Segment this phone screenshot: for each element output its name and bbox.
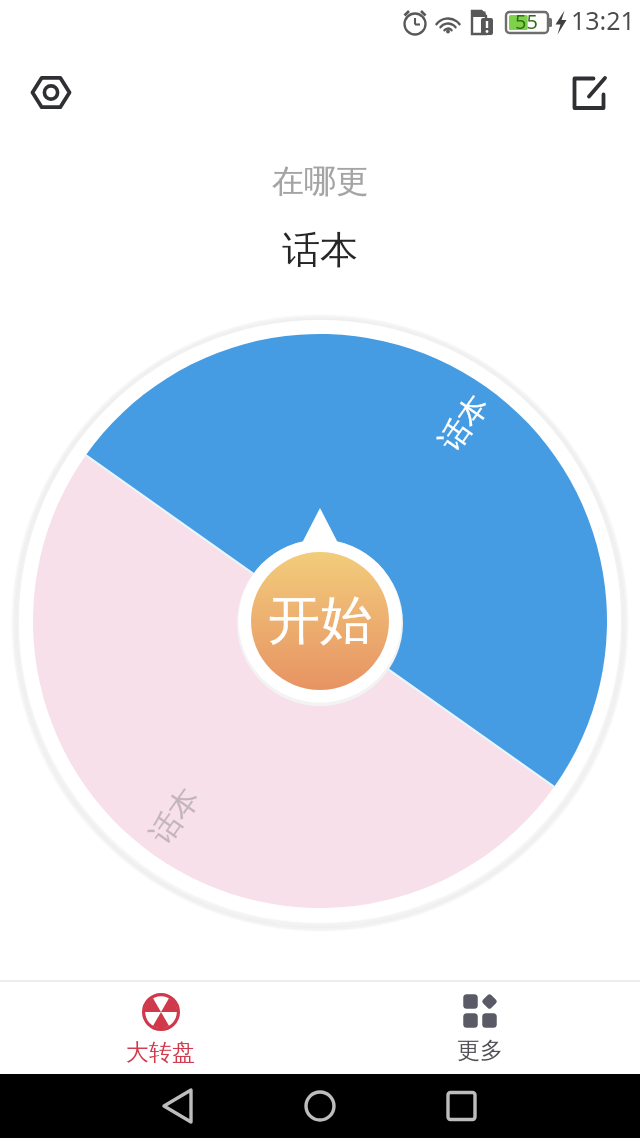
button[interactable]: 大转盘 xyxy=(0,982,320,1074)
staticText: 话本 xyxy=(0,226,640,274)
button[interactable]: 更多 xyxy=(320,982,640,1074)
staticText: 话本 xyxy=(142,780,208,851)
button[interactable]: Edit xyxy=(553,47,625,119)
staticText: 话本 xyxy=(431,387,497,458)
button[interactable]: Settings xyxy=(15,47,87,119)
button[interactable]: 开始 xyxy=(251,552,389,690)
staticText: 开始 xyxy=(268,588,372,654)
staticText: 13:21 xyxy=(571,3,635,37)
staticText: 更多 xyxy=(457,1036,503,1065)
staticText: 在哪更 xyxy=(0,161,640,201)
staticText: 大转盘 xyxy=(126,1038,195,1067)
staticText: 55 xyxy=(515,8,538,35)
